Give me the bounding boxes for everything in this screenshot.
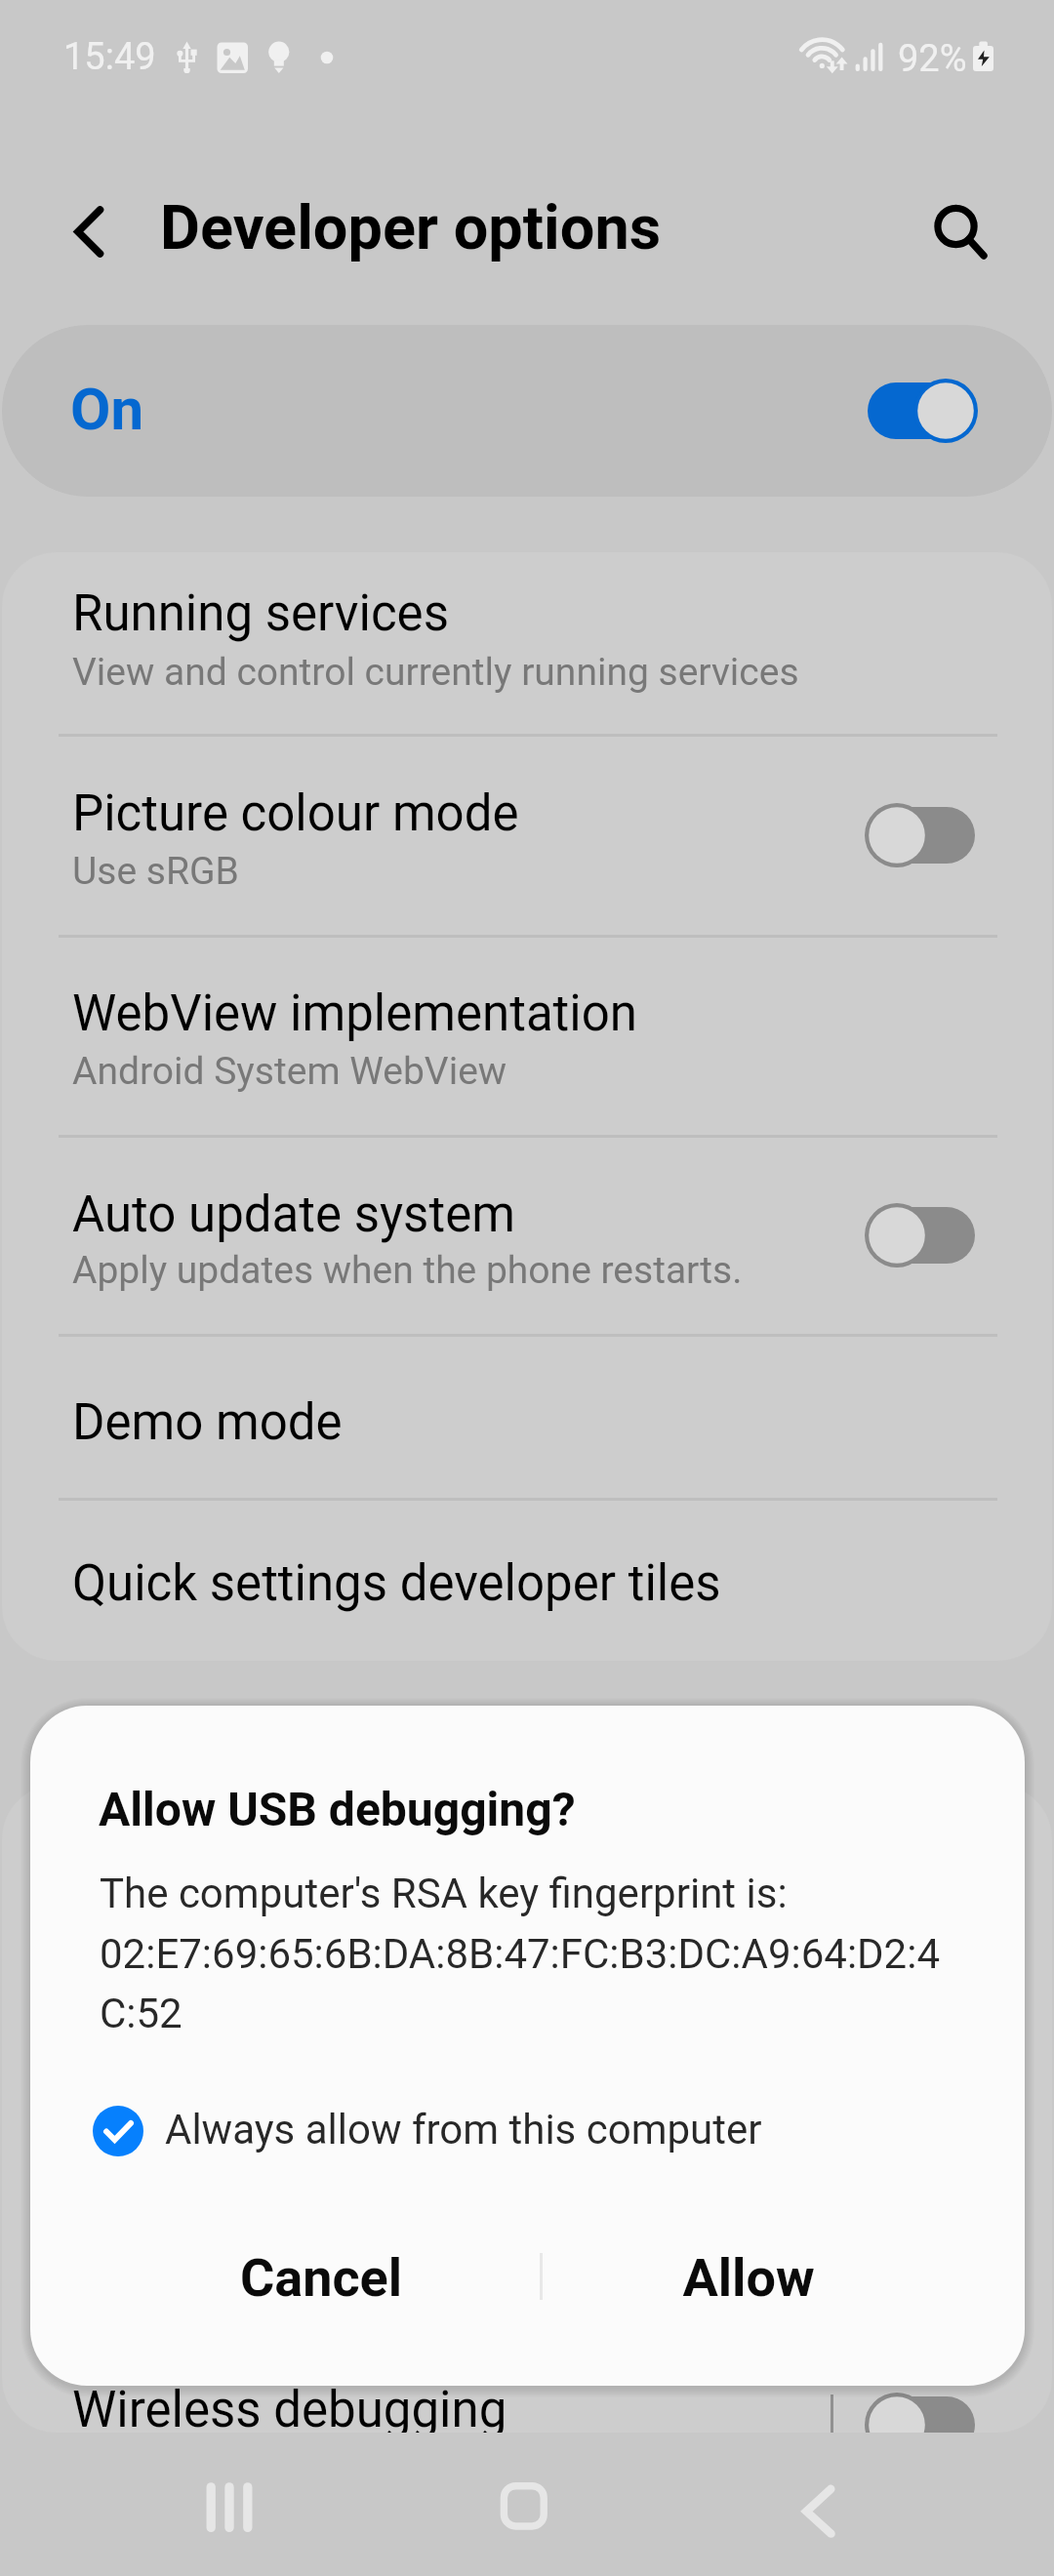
button[interactable]: On [2,325,1052,497]
button[interactable]: Back [750,2444,886,2576]
button[interactable] [2,1136,1052,1335]
staticText: Running services [72,584,449,643]
staticText: Allow [602,2247,895,2309]
staticText: Cancel [175,2247,467,2309]
staticText: Android System WebView [72,1049,507,1094]
staticText: Auto update system [72,1186,515,1244]
button[interactable]: Recent apps [162,2444,299,2576]
staticText: Allow USB debugging? [99,1782,576,1836]
button[interactable] [2,735,1052,936]
staticText: Developer options [160,192,662,264]
button[interactable]: Navigate up [23,177,133,286]
button[interactable]: Home [456,2444,592,2576]
button[interactable] [89,2092,831,2170]
button[interactable] [2,1335,1052,1499]
staticText: Quick settings developer tiles [72,1554,721,1613]
staticText: WebView implementation [72,985,637,1043]
staticText: Demo mode [72,1393,343,1452]
staticText: Picture colour mode [72,785,519,843]
staticText: Use sRGB [72,849,239,894]
button[interactable] [2,2327,1052,2430]
staticText: View and control currently running servi… [72,650,799,695]
staticText: On [70,375,144,443]
staticText: Wireless debugging [72,2381,507,2433]
staticText: Apply updates when the phone restarts. [72,1248,743,1293]
button[interactable] [537,2194,1025,2379]
staticText: 15:49 [63,35,156,79]
staticText: Always allow from this computer [165,2106,762,2153]
staticText: 92% [898,37,967,81]
button[interactable] [2,552,1052,735]
button[interactable]: Search [902,173,1011,282]
button[interactable] [30,2194,518,2379]
button[interactable] [2,1499,1052,1661]
button[interactable] [2,936,1052,1136]
staticText: The computer's RSA key fingerprint is: 0… [100,1870,978,2037]
